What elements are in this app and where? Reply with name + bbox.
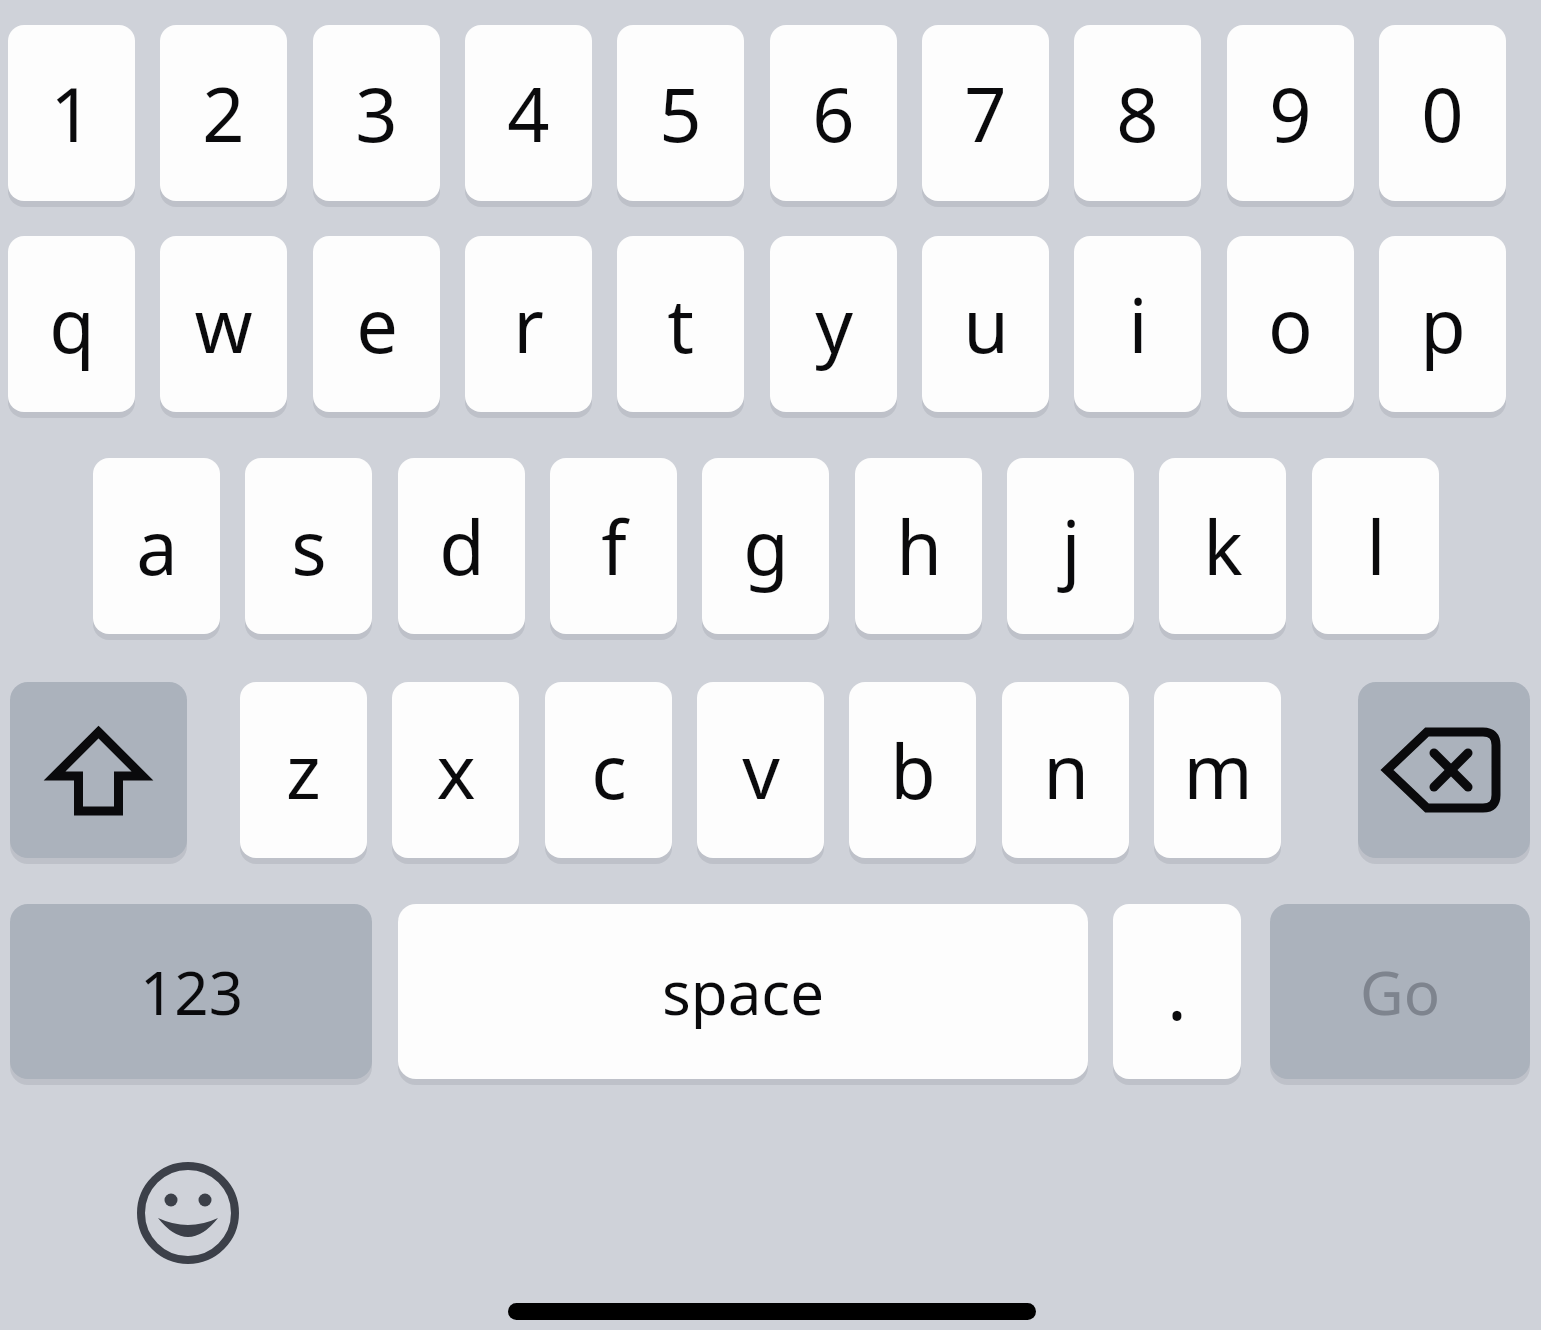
staticText: 8 — [1116, 63, 1159, 164]
staticText: h — [896, 496, 942, 597]
staticText: x — [436, 720, 476, 821]
staticText: 123 — [140, 951, 243, 1033]
button[interactable]: i — [1074, 236, 1201, 412]
button[interactable]: 9 — [1227, 25, 1354, 201]
button[interactable]: w — [160, 236, 287, 412]
button[interactable]: y — [770, 236, 897, 412]
button[interactable]: h — [855, 458, 982, 634]
staticText: b — [890, 720, 936, 821]
staticText: z — [286, 720, 321, 821]
button[interactable]: 1 — [8, 25, 135, 201]
staticText: q — [49, 274, 95, 375]
button[interactable]: z — [240, 682, 367, 858]
staticText: Go — [1360, 951, 1440, 1033]
button[interactable]: e — [313, 236, 440, 412]
button[interactable]: r — [465, 236, 592, 412]
button[interactable]: 123 — [10, 904, 372, 1079]
staticText: . — [1167, 941, 1187, 1042]
button[interactable]: 4 — [465, 25, 592, 201]
staticText: 5 — [659, 63, 702, 164]
button[interactable]: n — [1002, 682, 1129, 858]
staticText: a — [136, 496, 178, 597]
staticText: 0 — [1421, 63, 1464, 164]
staticText: o — [1268, 274, 1313, 375]
staticText: n — [1043, 720, 1089, 821]
staticText: 1 — [50, 63, 93, 164]
staticText: w — [194, 274, 253, 375]
staticText: u — [963, 274, 1009, 375]
staticText: 7 — [964, 63, 1007, 164]
button[interactable]: 6 — [770, 25, 897, 201]
staticText: t — [667, 274, 694, 375]
button[interactable]: 2 — [160, 25, 287, 201]
staticText: k — [1203, 496, 1243, 597]
button[interactable]: s — [245, 458, 372, 634]
staticText: j — [1061, 496, 1081, 597]
staticText: 2 — [202, 63, 245, 164]
staticText: 9 — [1269, 63, 1312, 164]
button[interactable]: x — [392, 682, 519, 858]
staticText: 6 — [812, 63, 855, 164]
staticText: space — [662, 951, 824, 1033]
button[interactable]: a — [93, 458, 220, 634]
button[interactable]: v — [697, 682, 824, 858]
staticText: g — [743, 496, 789, 597]
button[interactable]: g — [702, 458, 829, 634]
button[interactable]: k — [1159, 458, 1286, 634]
staticText: v — [742, 720, 780, 821]
button[interactable]: 8 — [1074, 25, 1201, 201]
staticText: e — [356, 274, 398, 375]
staticText: i — [1128, 274, 1148, 375]
staticText: p — [1420, 274, 1466, 375]
button[interactable]: Backspace — [1358, 682, 1530, 858]
button[interactable]: o — [1227, 236, 1354, 412]
staticText: l — [1366, 496, 1386, 597]
staticText: r — [513, 274, 544, 375]
button[interactable]: t — [617, 236, 744, 412]
staticText: 4 — [507, 63, 550, 164]
button[interactable]: m — [1154, 682, 1281, 858]
button[interactable]: l — [1312, 458, 1439, 634]
button[interactable]: space — [398, 904, 1088, 1079]
staticText: m — [1183, 720, 1253, 821]
staticText: y — [815, 274, 853, 375]
button[interactable]: Go — [1270, 904, 1530, 1079]
button[interactable]: Emoji keyboard — [132, 1157, 244, 1269]
button[interactable]: . — [1113, 904, 1241, 1079]
button[interactable]: u — [922, 236, 1049, 412]
button[interactable]: 7 — [922, 25, 1049, 201]
button[interactable]: d — [398, 458, 525, 634]
button[interactable]: j — [1007, 458, 1134, 634]
staticText: d — [439, 496, 485, 597]
staticText: c — [591, 720, 627, 821]
button[interactable]: c — [545, 682, 672, 858]
button[interactable]: Shift — [10, 682, 187, 858]
button[interactable]: f — [550, 458, 677, 634]
staticText: 3 — [355, 63, 398, 164]
button[interactable]: 0 — [1379, 25, 1506, 201]
button[interactable]: p — [1379, 236, 1506, 412]
button[interactable]: b — [849, 682, 976, 858]
button[interactable]: 5 — [617, 25, 744, 201]
staticText: s — [291, 496, 327, 597]
button[interactable]: q — [8, 236, 135, 412]
button[interactable]: 3 — [313, 25, 440, 201]
staticText: f — [601, 496, 627, 597]
